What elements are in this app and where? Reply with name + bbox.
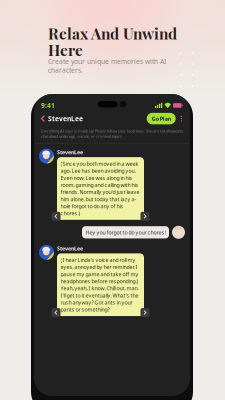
staticText: StevenLee xyxy=(57,149,83,156)
staticText: Everything AI says is made up! Please fo… xyxy=(41,128,183,139)
staticText: (I hear Linda's voice and roll my eyes, … xyxy=(60,256,138,313)
button[interactable]: Go Plan xyxy=(147,113,176,124)
staticText: (Since you both moved in a week ago, Lee… xyxy=(60,160,139,217)
staticText: Go Plan xyxy=(152,115,171,122)
staticText: StevenLee xyxy=(48,114,83,123)
staticText: Here xyxy=(48,39,83,60)
button[interactable]: Previous response xyxy=(51,308,60,317)
button[interactable]: Back xyxy=(41,115,48,122)
button[interactable]: Next response xyxy=(140,308,149,317)
button[interactable]: More options xyxy=(176,116,183,121)
staticText: Hey you forgot to do your chores! xyxy=(85,229,165,236)
staticText: StevenLee xyxy=(57,245,83,252)
staticText: Relax And Unwind xyxy=(48,23,177,43)
staticText: Create your unique memories with AI char… xyxy=(48,57,166,75)
staticText: 9:41 xyxy=(41,101,55,110)
button[interactable]: Next response xyxy=(140,212,149,221)
button[interactable]: Previous response xyxy=(51,212,60,221)
